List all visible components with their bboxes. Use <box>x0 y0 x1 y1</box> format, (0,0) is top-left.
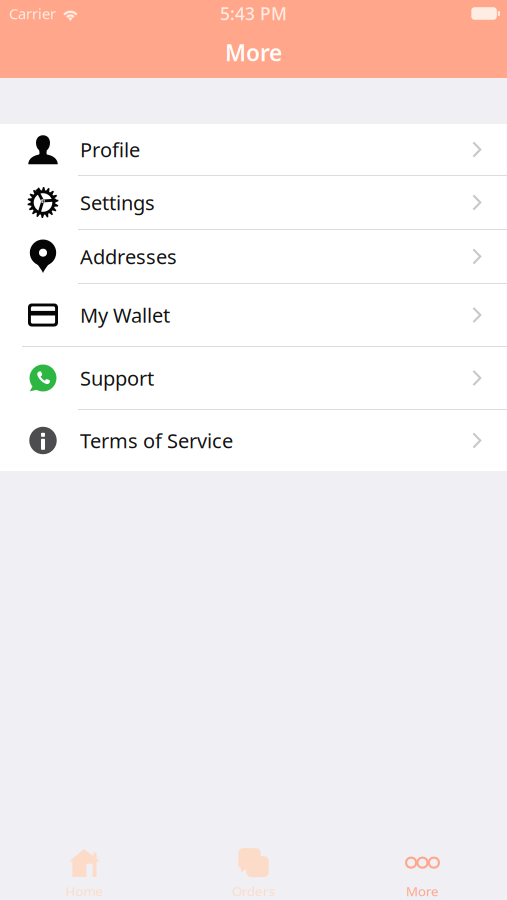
button[interactable]: Addresses <box>0 230 507 283</box>
button[interactable]: Orders <box>169 844 338 900</box>
staticText: Terms of Service <box>80 427 233 454</box>
staticText: My Wallet <box>80 302 170 328</box>
staticText: 5:43 PM <box>220 2 287 25</box>
staticText: More <box>406 882 439 900</box>
button[interactable]: Support <box>0 347 507 409</box>
button[interactable]: Terms of Service <box>0 410 507 471</box>
staticText: Orders <box>232 882 275 900</box>
staticText: Home <box>65 882 103 900</box>
staticText: Addresses <box>80 243 177 270</box>
button[interactable]: Home <box>0 844 169 900</box>
button[interactable]: My Wallet <box>0 284 507 346</box>
button[interactable]: Settings <box>0 176 507 229</box>
staticText: Settings <box>80 189 155 216</box>
button[interactable]: Profile <box>0 124 507 175</box>
staticText: Profile <box>80 136 140 163</box>
staticText: Support <box>80 365 154 391</box>
staticText: Carrier <box>9 4 56 23</box>
button[interactable]: More <box>338 844 507 900</box>
staticText: More <box>225 37 282 67</box>
